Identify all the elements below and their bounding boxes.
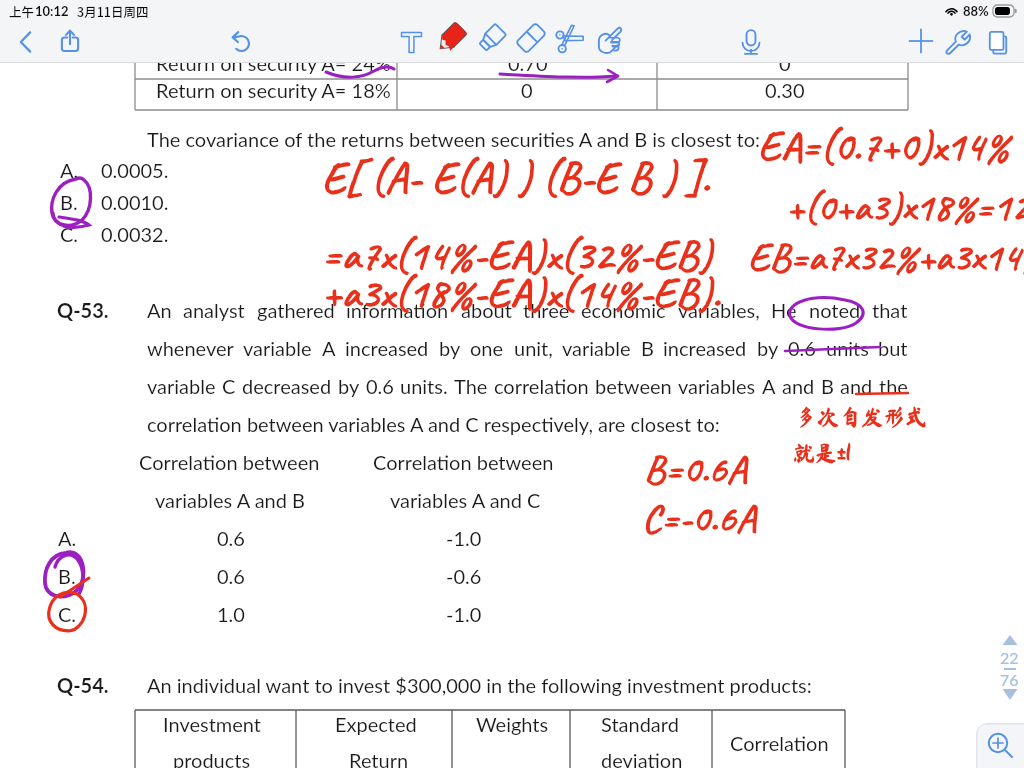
staticText: 0.0005. [101,158,169,182]
staticText: variables, [678,298,760,322]
staticText: the [879,374,908,398]
staticText: whenever [147,336,234,360]
staticText: Standard [601,712,679,736]
staticText: economic [581,298,666,322]
staticText: Investment [163,712,262,736]
staticText: Q-53. [57,298,109,322]
staticText: one [470,336,504,360]
staticText: 0.70 [508,63,548,75]
staticText: variable [562,336,631,360]
staticText: between [595,374,672,398]
staticText: 多次自发形式 [795,406,928,428]
staticText: 0.6 [217,564,245,588]
staticText: three [523,298,570,322]
button[interactable]: Page navigation [997,633,1023,705]
button[interactable]: Back [10,22,42,62]
staticText: C=-0.6A [642,493,756,543]
staticText: Correlation between [373,450,554,474]
staticText: analyst [183,298,245,322]
staticText: increased [345,336,429,360]
staticText: deviation [601,748,683,768]
staticText: -1.0 [446,602,482,626]
staticText: units. [400,374,448,398]
staticText: decreased [242,374,332,398]
staticText: A. [60,158,79,182]
staticText: C. [60,222,79,246]
button[interactable]: Settings [943,22,975,62]
staticText: variables A and B [155,488,305,512]
staticText: but [878,336,908,360]
staticText: 0.6 [217,526,245,550]
button[interactable]: Highlighter [476,22,508,62]
staticText: A [762,374,776,398]
staticText: An individual want to invest $300,000 in… [147,673,812,697]
staticText: correlation between variables A and C re… [147,412,720,436]
staticText: Correlation between [139,450,320,474]
staticText: -0.6 [446,564,482,588]
staticText: Expected [335,712,417,736]
button[interactable]: Undo [224,22,256,62]
staticText: products [173,748,251,768]
staticText: and [782,374,815,398]
staticText: +a3x(18%-EA)x(14%-EB). [322,266,721,320]
staticText: correlation [494,374,589,398]
button[interactable]: Add [905,22,937,62]
staticText: 就是±1 [793,442,851,464]
staticText: B [821,374,834,398]
staticText: 0 [779,63,791,75]
button[interactable]: Voice [735,22,767,62]
button[interactable]: Cut [555,22,587,62]
staticText: and [840,374,873,398]
staticText: 10:12 [35,3,69,19]
staticText: 0.30 [765,78,805,102]
staticText: +(0+a3)x18%=12.2 [786,182,1024,232]
staticText: 0.6 [788,336,816,360]
staticText: 0.0010. [101,190,169,214]
staticText: gathered [257,298,335,322]
staticText: Return on security A= 24% [156,63,391,75]
staticText: 3月11日周四 [77,2,149,20]
staticText: unit, [514,336,553,360]
staticText: 上午 [9,2,35,20]
button[interactable]: Share [54,22,86,62]
staticText: EB=a7x32%+a3x14% [748,232,1024,282]
button[interactable]: Pages [982,22,1014,62]
staticText: B. [58,564,76,588]
staticText: 0.6 [366,374,394,398]
staticText: =a7x(14%-EA)x(32%-EB) [322,228,713,282]
staticText: He [771,298,797,322]
staticText: information [346,298,449,322]
staticText: A. [58,526,77,550]
button[interactable]: Zoom in [976,723,1024,768]
staticText: The covariance of the returns between se… [147,127,761,151]
staticText: 22 [1000,648,1019,667]
staticText: variables A and C [390,488,541,512]
staticText: B. [60,190,78,214]
staticText: B=0.6A [644,444,747,494]
staticText: 0 [521,78,533,102]
staticText: Return [349,748,409,768]
staticText: that [872,298,908,322]
button[interactable]: Pen [435,22,467,62]
staticText: variables [678,374,756,398]
staticText: The [454,374,488,398]
staticText: C. [58,602,77,626]
button[interactable]: Text tool [395,22,427,62]
staticText: by [757,336,779,360]
staticText: variable [147,374,216,398]
staticText: Return on security A= 18% [156,78,391,102]
staticText: Weights [476,712,549,736]
staticText: by [338,374,360,398]
staticText: C [222,374,236,398]
staticText: Correlation [730,731,829,755]
button[interactable]: Hand [592,22,624,62]
button[interactable]: Eraser [515,22,547,62]
staticText: EA=(0.7+0)x14% [758,120,1009,173]
staticText: 88% [963,3,989,19]
staticText: 0.0032. [101,222,169,246]
staticText: E[ (A- E(A) ) (B-E B ) ]. [322,150,710,205]
staticText: units [826,336,869,360]
staticText: An [147,298,172,322]
staticText: by [439,336,461,360]
staticText: variable [243,336,312,360]
